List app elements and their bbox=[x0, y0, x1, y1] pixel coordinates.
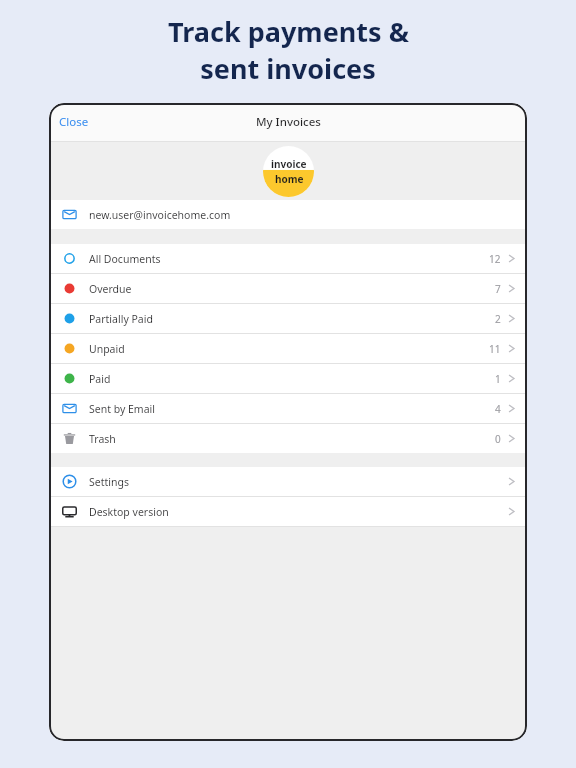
button[interactable]: Trash bbox=[49, 424, 527, 453]
staticText: My Invoices bbox=[256, 114, 321, 130]
staticText: Settings bbox=[89, 475, 129, 489]
staticText: Desktop version bbox=[89, 505, 169, 519]
button[interactable]: Settings bbox=[49, 467, 527, 496]
staticText: 7 bbox=[495, 282, 501, 296]
staticText: Unpaid bbox=[89, 342, 125, 356]
staticText: sent invoices bbox=[200, 50, 376, 87]
staticText: 4 bbox=[495, 402, 501, 416]
button[interactable]: Sent by Email bbox=[49, 394, 527, 423]
button[interactable]: Desktop version bbox=[49, 497, 527, 526]
staticText: Overdue bbox=[89, 282, 132, 296]
staticText: new.user@invoicehome.com bbox=[89, 208, 231, 222]
staticText: invoice bbox=[271, 157, 307, 171]
staticText: Sent by Email bbox=[89, 402, 155, 416]
button[interactable]: new.user@invoicehome.com bbox=[49, 200, 527, 229]
button[interactable]: Partially Paid bbox=[49, 304, 527, 333]
button[interactable]: All Documents bbox=[49, 244, 527, 273]
button[interactable]: Close bbox=[53, 108, 95, 136]
staticText: 1 bbox=[495, 372, 501, 386]
staticText: 0 bbox=[495, 432, 501, 446]
button[interactable]: Paid bbox=[49, 364, 527, 393]
staticText: 2 bbox=[495, 312, 501, 326]
staticText: home bbox=[275, 172, 304, 186]
staticText: All Documents bbox=[89, 252, 161, 266]
staticText: Close bbox=[59, 114, 89, 130]
button[interactable]: Unpaid bbox=[49, 334, 527, 363]
staticText: Partially Paid bbox=[89, 312, 153, 326]
staticText: Paid bbox=[89, 372, 111, 386]
staticText: 11 bbox=[489, 342, 501, 356]
staticText: Track payments & bbox=[168, 13, 409, 50]
staticText: Trash bbox=[89, 432, 116, 446]
button[interactable]: Overdue bbox=[49, 274, 527, 303]
staticText: 12 bbox=[489, 252, 501, 266]
